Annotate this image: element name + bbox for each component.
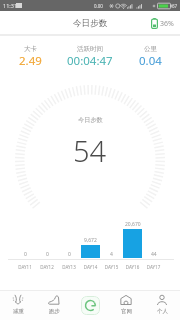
staticText: 4 [110,251,113,258]
staticText: DAY16 [122,264,143,270]
staticText: 官网 [121,308,132,315]
button[interactable]: 官网 [108,290,144,320]
staticText: 20,670 [125,221,141,228]
staticText: 0.00 [94,3,103,9]
button[interactable]: 个人 [144,290,180,320]
staticText: DAY11 [14,264,36,270]
staticText: 9,672 [84,237,97,244]
staticText: 今日步数 [78,116,103,124]
staticText: 个人 [157,308,168,315]
staticText: 0 [68,251,71,258]
staticText: DAY15 [101,264,122,270]
staticText: 今日步数 [73,18,108,29]
staticText: 0 [24,251,27,258]
staticText: 减重 [13,308,24,315]
staticText: 大卡 [24,45,37,53]
button[interactable]: Home [72,290,108,320]
staticText: DAY17 [143,264,164,270]
staticText: DAY13 [58,264,80,270]
staticText: 0.04 [139,53,162,69]
staticText: DAY14 [80,264,101,270]
button[interactable]: 跑步 [36,290,72,320]
staticText: 0 [46,251,49,258]
button[interactable]: 公里 [120,45,180,77]
button[interactable]: 活跃时间 [60,45,120,77]
staticText: 36% [160,19,174,29]
staticText: 11:31 [3,2,18,9]
button[interactable]: Battery status [151,18,174,29]
staticText: 67 [172,3,178,9]
staticText: 44 [151,251,157,258]
staticText: 公里 [144,45,157,53]
button[interactable]: 减重 [0,290,36,320]
button[interactable]: 大卡 [0,45,60,77]
staticText: 2.49 [19,53,42,69]
staticText: 54 [73,131,107,170]
staticText: DAY12 [36,264,58,270]
staticText: 00:04:47 [67,53,113,69]
staticText: 跑步 [49,308,60,315]
staticText: 活跃时间 [77,45,103,53]
